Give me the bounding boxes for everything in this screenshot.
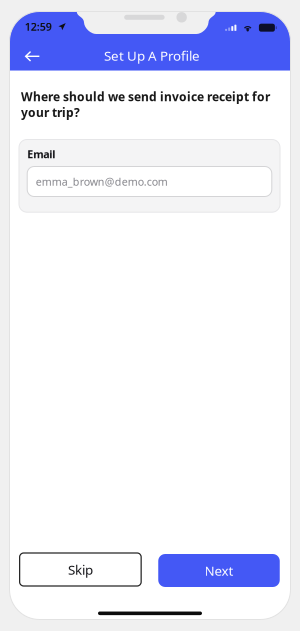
button[interactable]: Skip [20, 553, 141, 586]
staticText: Next [204, 562, 233, 579]
button[interactable]: Next [158, 554, 280, 587]
staticText: Where should we send invoice receipt for… [21, 89, 270, 120]
staticText: Skip [68, 561, 93, 578]
staticText: Email [27, 147, 55, 161]
button[interactable]: Back [16, 43, 48, 69]
staticText: Set Up A Profile [104, 47, 200, 64]
staticText: emma_brown@demo.com [36, 174, 168, 189]
staticText: 12:59 [25, 20, 52, 34]
